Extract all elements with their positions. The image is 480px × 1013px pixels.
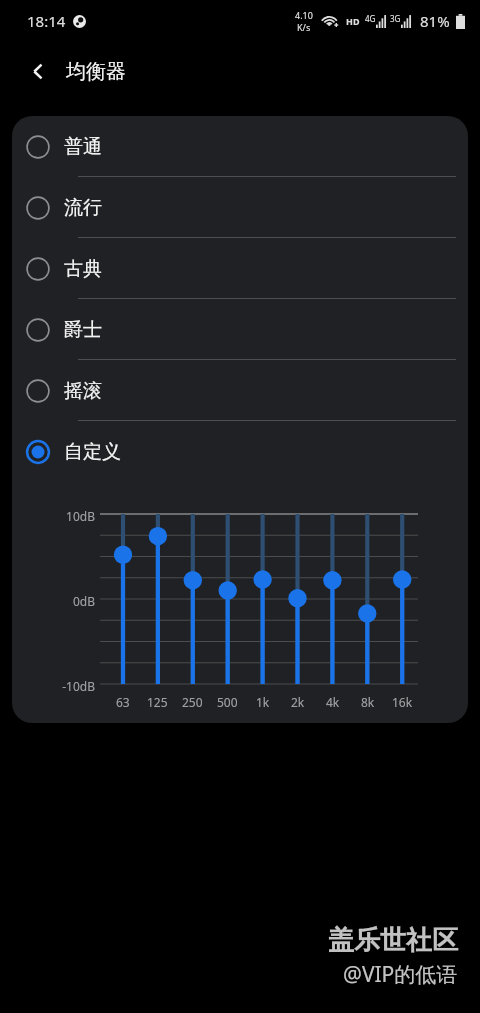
staticText: 81% <box>420 11 450 31</box>
staticText: K/s <box>297 21 311 33</box>
staticText: HD <box>346 15 360 27</box>
button[interactable]: 流行 <box>12 177 468 238</box>
staticText: 4G <box>365 13 376 24</box>
staticText: 16k <box>392 694 413 710</box>
staticText: 1k <box>256 694 270 710</box>
button[interactable]: 古典 <box>12 238 468 299</box>
staticText: 2k <box>291 694 305 710</box>
staticText: 普通 <box>64 135 102 159</box>
button[interactable]: 普通 <box>12 116 468 177</box>
staticText: 125 <box>147 694 168 710</box>
staticText: 0dB <box>46 593 95 609</box>
staticText: 18:14 <box>27 11 66 31</box>
staticText: 盖乐世社区 <box>328 924 458 957</box>
button[interactable]: 摇滚 <box>12 360 468 421</box>
staticText: 爵士 <box>64 318 102 342</box>
staticText: 摇滚 <box>64 379 102 403</box>
button[interactable]: 爵士 <box>12 299 468 360</box>
staticText: 4k <box>326 694 340 710</box>
staticText: 250 <box>182 694 203 710</box>
staticText: 3G <box>390 13 401 24</box>
staticText: 63 <box>116 694 130 710</box>
button[interactable]: Back <box>20 53 56 89</box>
staticText: 500 <box>217 694 238 710</box>
staticText: 8k <box>361 694 375 710</box>
staticText: 自定义 <box>64 440 121 464</box>
button[interactable]: 自定义 <box>12 421 468 482</box>
staticText: @VIP的低语 <box>343 960 458 989</box>
staticText: 古典 <box>64 257 102 281</box>
staticText: 10dB <box>46 508 95 524</box>
staticText: 均衡器 <box>66 59 126 84</box>
staticText: 4.10 <box>295 9 313 21</box>
staticText: -10dB <box>46 678 95 694</box>
staticText: 流行 <box>64 196 102 220</box>
